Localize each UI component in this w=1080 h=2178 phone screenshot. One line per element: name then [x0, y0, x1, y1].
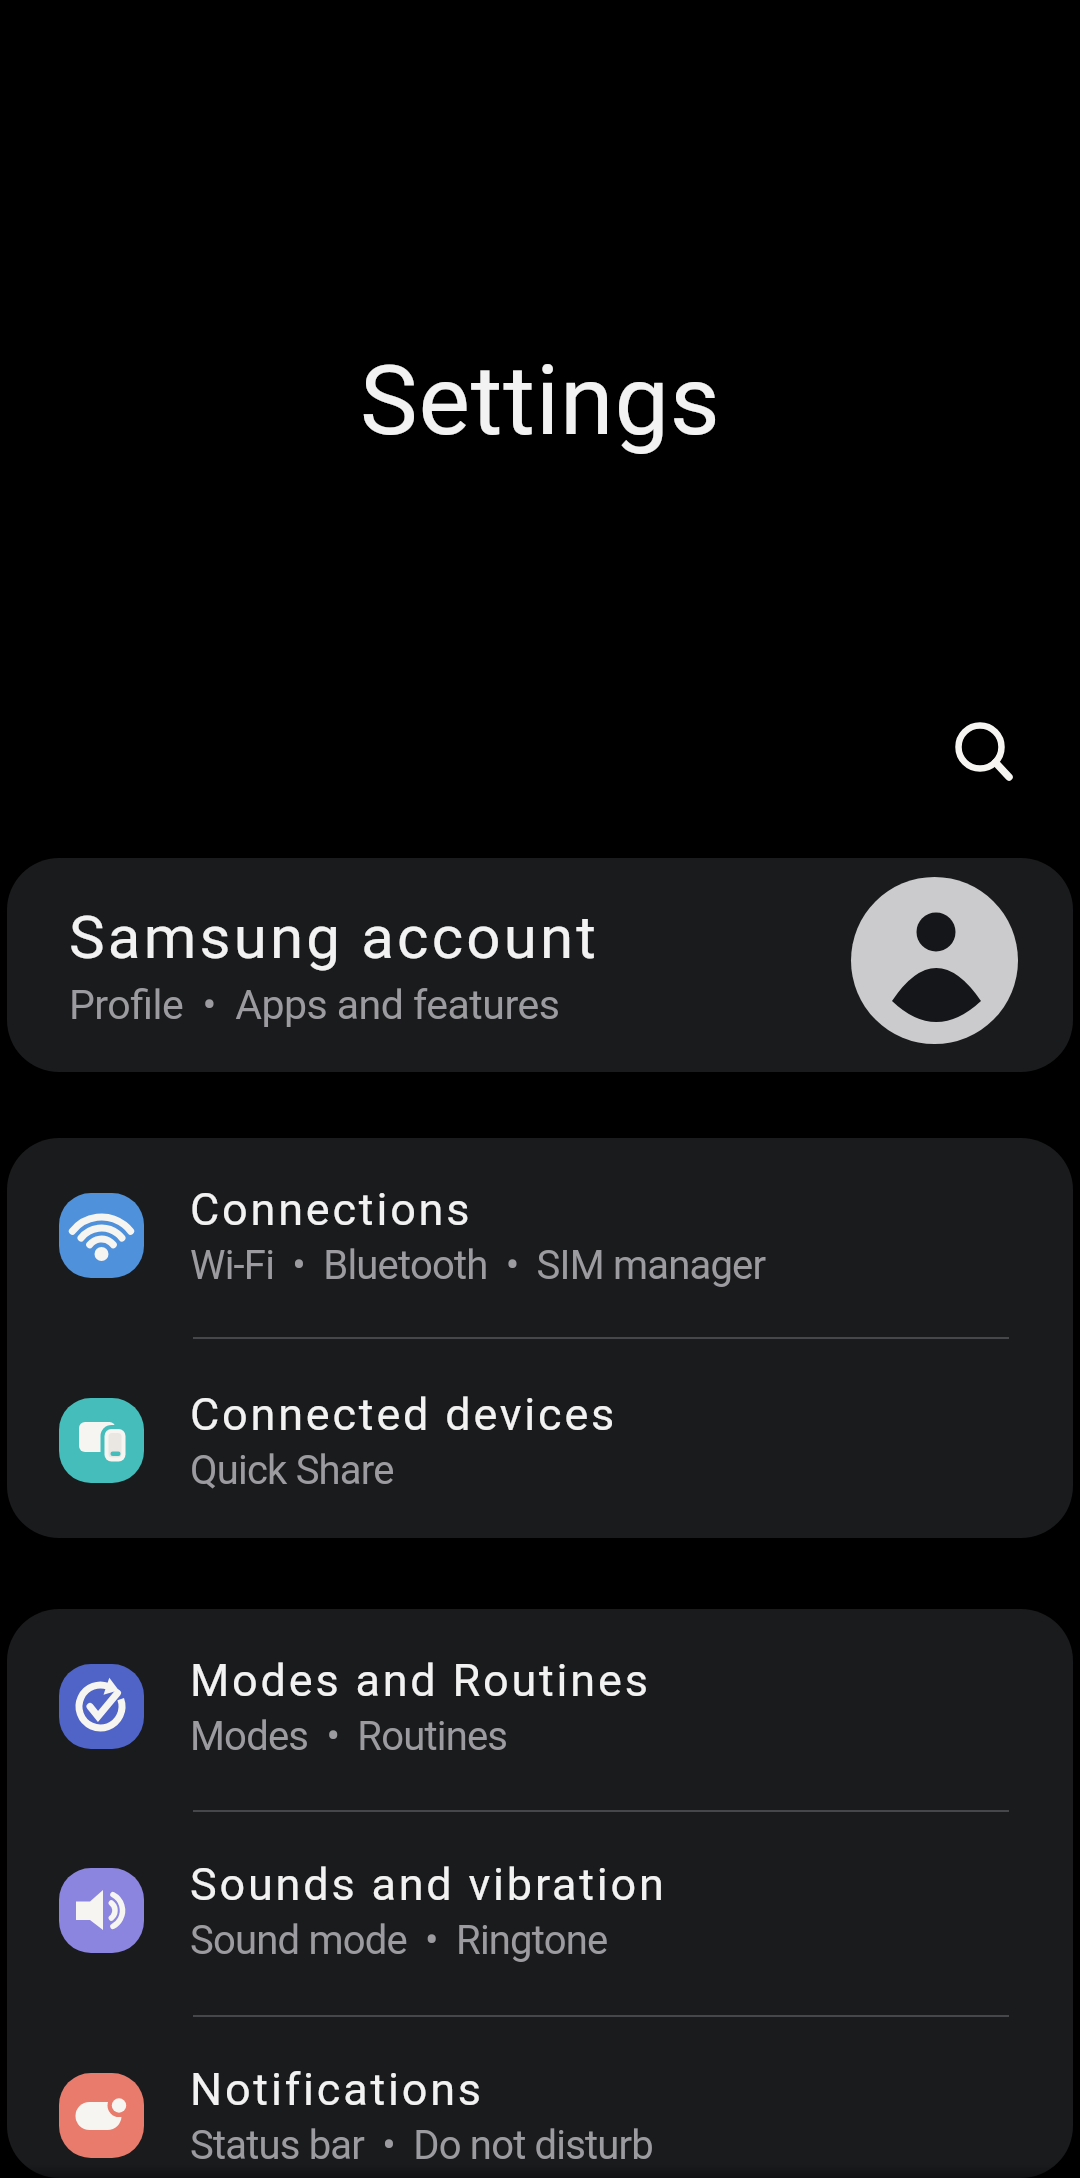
button[interactable]: Samsung account	[7, 858, 1073, 1072]
staticText: Sound mode • Ringtone	[190, 1917, 608, 1964]
staticText: Sounds and vibration	[190, 1858, 667, 1911]
button[interactable]: Connections	[7, 1138, 1073, 1337]
button[interactable]: Modes and Routines	[7, 1609, 1073, 1810]
staticText: Settings	[360, 344, 721, 458]
staticText: Samsung account	[69, 902, 600, 972]
button[interactable]	[930, 698, 1030, 798]
staticText: Connections	[190, 1183, 473, 1236]
button[interactable]: Sounds and vibration	[7, 1812, 1073, 2015]
button[interactable]: Notifications	[7, 2017, 1073, 2178]
staticText: Wi-Fi • Bluetooth • SIM manager	[190, 1242, 766, 1289]
staticText: Notifications	[190, 2063, 484, 2116]
staticText: Status bar • Do not disturb	[190, 2122, 654, 2169]
staticText: Profile • Apps and features	[69, 981, 560, 1029]
staticText: Quick Share	[190, 1447, 394, 1494]
staticText: Modes and Routines	[190, 1654, 651, 1707]
staticText: Modes • Routines	[190, 1713, 508, 1760]
button[interactable]: Connected devices	[7, 1339, 1073, 1538]
staticText: Connected devices	[190, 1388, 618, 1441]
